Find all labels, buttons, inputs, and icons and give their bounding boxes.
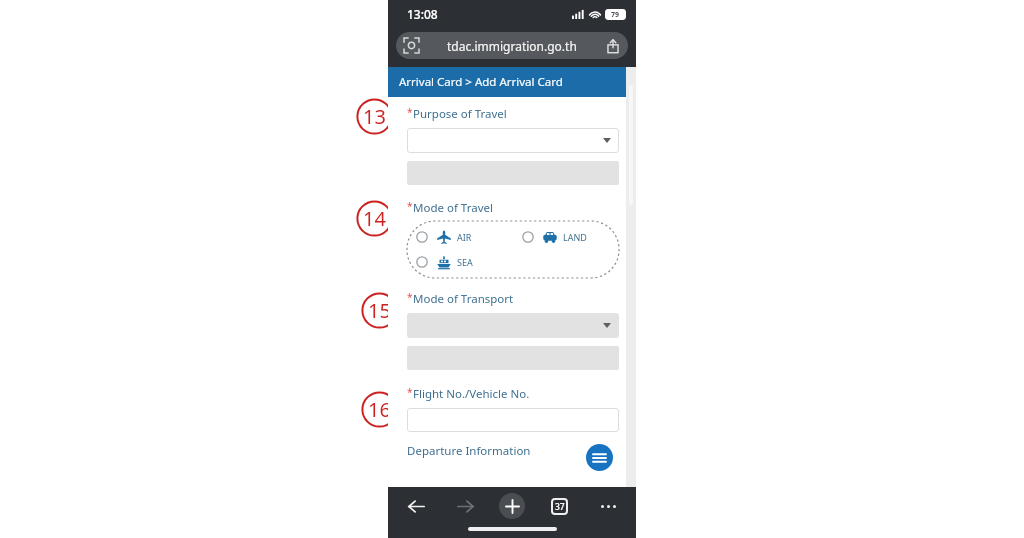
staticText: 15 [368,297,391,324]
staticText: 14 [363,205,386,232]
button[interactable]: New tab [499,493,525,519]
staticText: * [407,385,413,399]
button[interactable]: Arrival Card > Add Arrival Card [388,67,636,97]
staticText: SEA [457,256,473,268]
staticText: 37 [555,501,565,513]
button[interactable]: Forward [450,491,480,521]
button[interactable]: Page settings [396,32,628,59]
button[interactable]: Tabs [544,491,574,521]
staticText: tdac.immigration.go.th [447,38,577,54]
button[interactable]: AIR [416,227,522,247]
staticText: 13 [363,103,386,130]
button[interactable]: LAND [522,227,619,247]
button[interactable]: SEA [416,252,522,272]
staticText: Mode of Transport [413,291,514,307]
staticText: * [407,290,413,304]
button[interactable]: More options [593,491,623,521]
other: Page settings [404,38,419,53]
staticText: Arrival Card > Add Arrival Card [399,74,563,90]
staticText: Flight No./Vehicle No. [413,386,530,402]
staticText: Purpose of Travel [413,106,507,122]
staticText: 79 [611,10,620,20]
staticText: Mode of Travel [413,200,493,216]
button[interactable]: Select option [407,128,619,153]
button[interactable]: Menu [586,444,613,471]
staticText: * [407,105,413,119]
button[interactable]: Select option [407,313,619,338]
button[interactable]: Departure Information [407,443,531,459]
button[interactable] [407,408,619,432]
button[interactable]: Back [401,491,431,521]
staticText: LAND [563,231,587,243]
staticText: 13:08 [407,6,438,22]
staticText: AIR [457,231,472,243]
staticText: * [407,199,413,213]
other: Share [606,39,620,53]
staticText: 16 [368,396,391,423]
